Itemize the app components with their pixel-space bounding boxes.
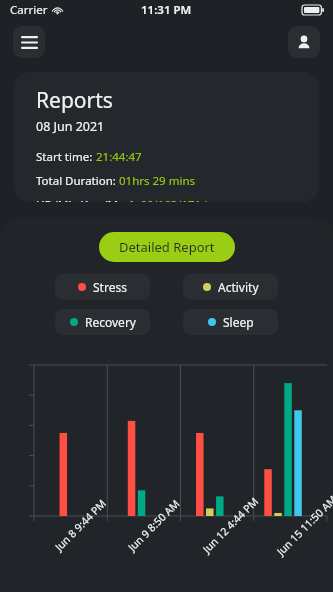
staticText: Recovery bbox=[85, 314, 136, 330]
button[interactable]: Menu bbox=[13, 26, 45, 58]
staticText: 100 bbox=[11, 365, 30, 366]
staticText: 11:31 PM bbox=[141, 2, 192, 18]
button[interactable]: Detailed Report bbox=[99, 232, 235, 262]
staticText: Detailed Report bbox=[119, 238, 215, 256]
button[interactable]: Sleep bbox=[183, 309, 278, 335]
staticText: Start time: bbox=[36, 149, 96, 165]
staticText: 80 bbox=[17, 395, 30, 396]
staticText: HR (Min/Avg/Max): bbox=[36, 197, 140, 202]
staticText: Jun 15 11:50 AM bbox=[274, 492, 333, 558]
button[interactable]: Recovery bbox=[55, 309, 150, 335]
staticText: 40 bbox=[17, 455, 30, 456]
staticText: Carrier bbox=[10, 2, 48, 18]
staticText: 20 bbox=[17, 485, 30, 486]
button[interactable]: Activity bbox=[183, 274, 278, 300]
button[interactable]: Reports bbox=[14, 72, 319, 202]
staticText: 08 Jun 2021 bbox=[36, 118, 105, 135]
staticText: 01hrs 29 mins bbox=[119, 173, 195, 189]
staticText: 21:44:47 bbox=[96, 149, 142, 165]
staticText: Jun 12 4:44 PM bbox=[200, 494, 261, 556]
staticText: 0 bbox=[23, 515, 30, 516]
button[interactable]: Stress bbox=[55, 274, 150, 300]
staticText: Sleep bbox=[223, 314, 254, 330]
button[interactable]: Profile bbox=[288, 26, 320, 58]
staticText: Jun 9 8:50 AM bbox=[125, 496, 183, 554]
staticText: Total Duration: bbox=[36, 173, 119, 189]
staticText: Activity bbox=[218, 279, 259, 295]
staticText: Jun 8 9:44 PM bbox=[52, 496, 109, 554]
staticText: Reports bbox=[36, 86, 113, 115]
staticText: 60 bbox=[17, 425, 30, 426]
staticText: Stress bbox=[93, 279, 127, 295]
staticText: 66/163/171 bpm bbox=[140, 197, 230, 202]
